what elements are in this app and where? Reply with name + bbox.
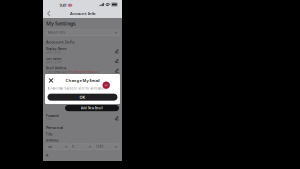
staticText: Account Info (46, 39, 75, 45)
staticText: REC (105, 84, 108, 86)
staticText: jdoe1234 (46, 60, 61, 64)
button[interactable]: Back (45, 9, 52, 17)
staticText: 9:41 (59, 3, 66, 8)
staticText: Email Address (46, 67, 66, 70)
staticText: Account Info (70, 11, 95, 16)
staticText: jdoe1234 (46, 51, 61, 54)
staticText: Personal (46, 125, 63, 130)
staticText: j.doe@mail.com (46, 70, 67, 74)
staticText: Password (46, 114, 59, 118)
button[interactable]: Edit Display Name (115, 47, 119, 53)
staticText: •••••• (46, 118, 52, 121)
button[interactable]: OK (47, 94, 117, 101)
staticText: OK (79, 94, 85, 100)
staticText: A new email has been sent for verificati… (47, 87, 106, 90)
staticText: User Name (46, 57, 62, 60)
button[interactable]: Edit User Name (115, 57, 119, 63)
button[interactable]: Close (47, 77, 54, 84)
button[interactable]: 8 (71, 144, 93, 150)
staticText: Title (46, 133, 53, 136)
staticText: Add New Email (81, 106, 103, 110)
button[interactable]: Edit Password (115, 114, 119, 120)
button[interactable]: Add New Email (65, 105, 119, 111)
button[interactable]: 1983 (94, 144, 119, 150)
staticText: 8 (72, 145, 74, 148)
staticText: 1983 (96, 145, 104, 148)
staticText: My Settings (46, 20, 76, 27)
staticText: Birthday (46, 139, 59, 142)
button[interactable]: May (46, 144, 69, 150)
staticText: (Pending verification) (68, 70, 99, 74)
staticText: Display Name (46, 47, 67, 51)
button[interactable]: Account Info (46, 29, 119, 36)
staticText: Account Info (48, 31, 66, 34)
staticText: Change My Email (65, 78, 99, 83)
staticText: May (48, 145, 52, 148)
button[interactable]: Edit Email Address (115, 67, 119, 73)
